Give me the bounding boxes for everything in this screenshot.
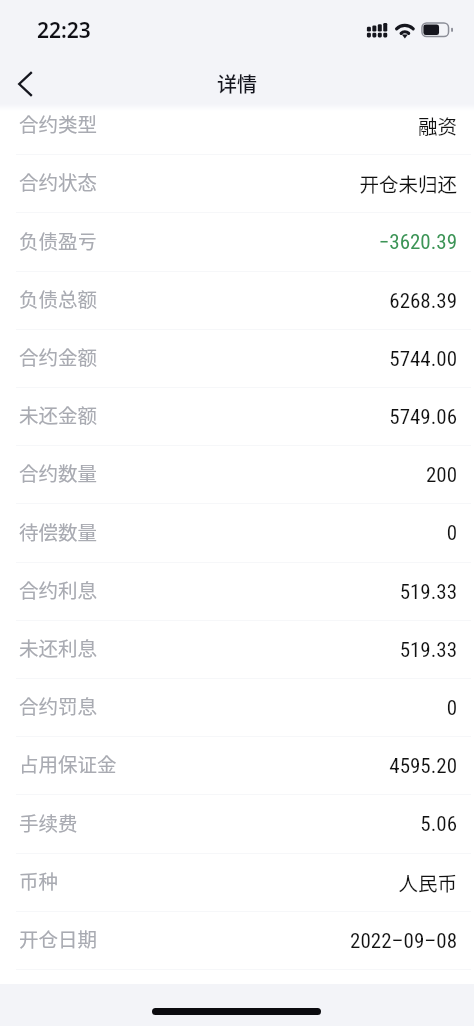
staticText: 5749.06	[389, 405, 457, 430]
staticText: 详情	[217, 69, 257, 98]
staticText: 合约金额	[19, 342, 98, 370]
button[interactable]: 开仓日期	[0, 912, 474, 970]
button[interactable]: 待偿数量	[0, 504, 474, 563]
button[interactable]: 合约利息	[0, 563, 474, 621]
staticText: 合约类型	[19, 109, 98, 137]
staticText: 占用保证金	[19, 749, 117, 777]
button[interactable]: 未还金额	[0, 388, 474, 446]
button[interactable]: 合约状态	[0, 155, 474, 213]
staticText: 合约罚息	[19, 691, 98, 719]
button[interactable]: Back	[3, 62, 47, 106]
staticText: 开仓未归还	[359, 169, 457, 197]
staticText: 合约利息	[19, 575, 98, 603]
staticText: −3620.39	[378, 230, 457, 255]
button[interactable]: 合约罚息	[0, 679, 474, 737]
staticText: 5744.00	[389, 347, 457, 372]
staticText: 未还金额	[19, 400, 98, 428]
button[interactable]: 手续费	[0, 795, 474, 854]
button[interactable]: 负债盈亏	[0, 213, 474, 272]
button[interactable]: 合约金额	[0, 330, 474, 388]
staticText: 0	[446, 521, 457, 546]
staticText: 未还利息	[19, 633, 98, 661]
staticText: 融资	[417, 111, 457, 139]
staticText: 人民币	[398, 868, 457, 896]
button[interactable]: 负债总额	[0, 272, 474, 330]
button[interactable]: 合约类型	[0, 97, 474, 155]
staticText: 合约数量	[19, 458, 98, 486]
staticText: 负债盈亏	[19, 226, 98, 254]
staticText: 开仓日期	[19, 924, 98, 952]
button[interactable]: 合约数量	[0, 446, 474, 504]
staticText: 合约状态	[19, 167, 98, 195]
staticText: 519.33	[399, 638, 457, 663]
staticText: 519.33	[399, 580, 457, 605]
button[interactable]: 占用保证金	[0, 737, 474, 795]
staticText: 4595.20	[389, 754, 457, 779]
staticText: 2022–09–08	[350, 929, 457, 954]
staticText: 22:23	[37, 16, 91, 45]
staticText: 0	[446, 696, 457, 721]
staticText: 5.06	[420, 812, 457, 837]
staticText: 6268.39	[389, 289, 457, 314]
button[interactable]: 未还利息	[0, 621, 474, 679]
staticText: 币种	[19, 866, 59, 894]
staticText: 200	[425, 463, 457, 488]
staticText: 手续费	[19, 808, 78, 836]
staticText: 待偿数量	[19, 517, 98, 545]
button[interactable]: 币种	[0, 854, 474, 912]
staticText: 负债总额	[19, 284, 98, 312]
